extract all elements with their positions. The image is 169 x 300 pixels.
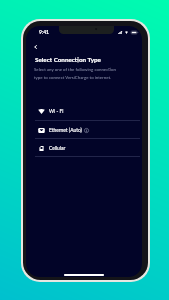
staticText: Select Connection Type — [35, 56, 101, 64]
staticText: Wi - Fi — [49, 108, 64, 114]
staticText: Ethernet (Auto) — [49, 127, 82, 133]
staticText: Cellular — [49, 145, 66, 151]
button[interactable]: Wi - Fi — [26, 102, 142, 120]
button[interactable]: Back — [29, 40, 42, 53]
button[interactable]: Ethernet (Auto) — [26, 121, 142, 139]
staticText: 9:41 — [39, 29, 49, 35]
staticText: Select any one of the following connecti… — [34, 67, 116, 80]
button[interactable]: Cellular — [26, 139, 142, 157]
